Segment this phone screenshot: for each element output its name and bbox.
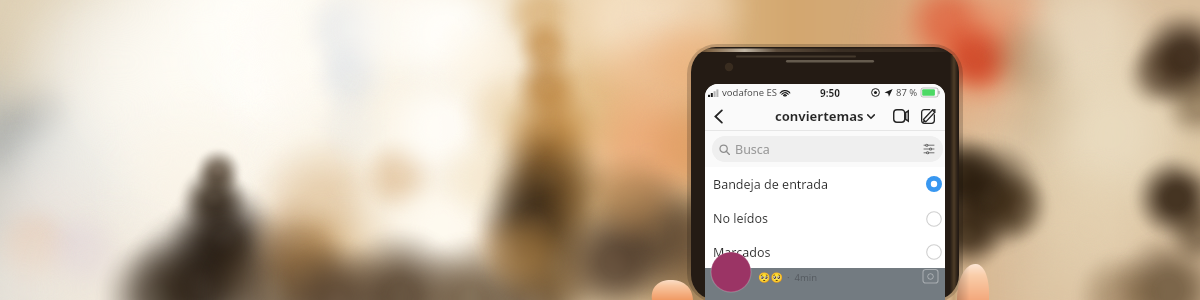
button[interactable]: No leídos [705, 201, 945, 236]
staticText: 🥺🥺 [758, 272, 783, 284]
staticText: Bandeja de entrada [713, 176, 828, 193]
staticText: Busca [735, 141, 770, 158]
button[interactable]: 🥺🥺 [705, 268, 945, 300]
button[interactable]: Marcados [705, 236, 945, 268]
button[interactable]: Busca [712, 136, 943, 162]
button[interactable]: Bandeja de entrada [705, 167, 945, 201]
staticText: conviertemas [775, 107, 864, 125]
staticText: vodafone ES [722, 86, 777, 99]
button[interactable]: New message [916, 104, 940, 128]
button[interactable]: Back [705, 101, 733, 131]
staticText: 87 % [896, 86, 918, 99]
button[interactable]: conviertemas [775, 107, 875, 125]
staticText: 9:50 [820, 86, 840, 100]
staticText: No leídos [713, 210, 769, 227]
staticText: · 4min [787, 271, 818, 284]
staticText: Marcados [713, 244, 771, 261]
button[interactable]: Video call [889, 104, 913, 128]
